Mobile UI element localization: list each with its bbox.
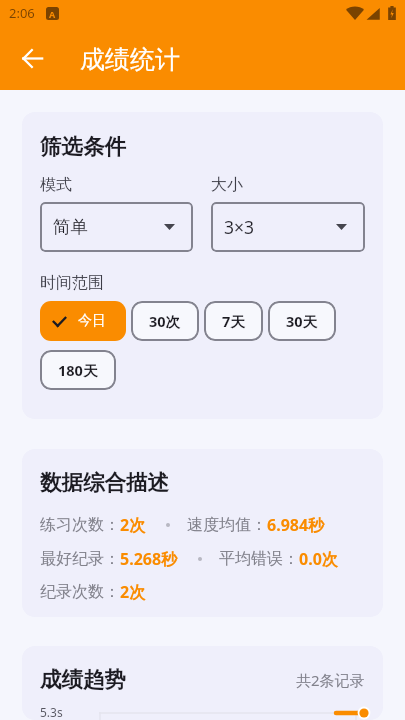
staticText: 2次 <box>120 514 146 536</box>
staticText: 数据综合描述 <box>40 469 169 496</box>
staticText: 纪录次数： <box>40 582 120 602</box>
staticText: 5.268秒 <box>120 548 178 570</box>
staticText: 今日 <box>78 312 106 330</box>
button[interactable]: 30天 <box>268 301 336 341</box>
staticText: 180天 <box>58 360 98 380</box>
staticText: 3×3 <box>224 215 336 239</box>
button[interactable]: 30次 <box>131 301 199 341</box>
staticText: 共2条记录 <box>296 670 365 690</box>
staticText: 5.3s <box>40 704 63 720</box>
button[interactable]: 3×3 <box>211 202 365 252</box>
staticText: 筛选条件 <box>40 133 126 160</box>
staticText: 0.0次 <box>299 548 338 570</box>
staticText: 大小 <box>211 175 243 195</box>
staticText: 成绩趋势 <box>40 666 126 693</box>
staticText: 模式 <box>40 175 72 195</box>
button[interactable]: 180天 <box>40 350 116 390</box>
staticText: 简单 <box>53 216 164 238</box>
staticText: A <box>49 8 56 20</box>
staticText: 成绩统计 <box>80 44 180 75</box>
staticText: 2:06 <box>9 4 35 22</box>
staticText: 速度均值： <box>187 515 267 535</box>
button[interactable]: 今日 <box>40 301 126 341</box>
staticText: 30次 <box>149 311 181 331</box>
staticText: 平均错误： <box>219 549 299 569</box>
staticText: 最好纪录： <box>40 549 120 569</box>
staticText: 时间范围 <box>40 273 104 293</box>
staticText: 6.984秒 <box>267 514 325 536</box>
staticText: 练习次数： <box>40 515 120 535</box>
button[interactable]: 7天 <box>204 301 263 341</box>
button[interactable]: Back <box>14 40 50 76</box>
button[interactable]: 简单 <box>40 202 193 252</box>
staticText: 7天 <box>222 311 245 331</box>
staticText: 2次 <box>120 581 146 603</box>
staticText: 30天 <box>286 311 318 331</box>
